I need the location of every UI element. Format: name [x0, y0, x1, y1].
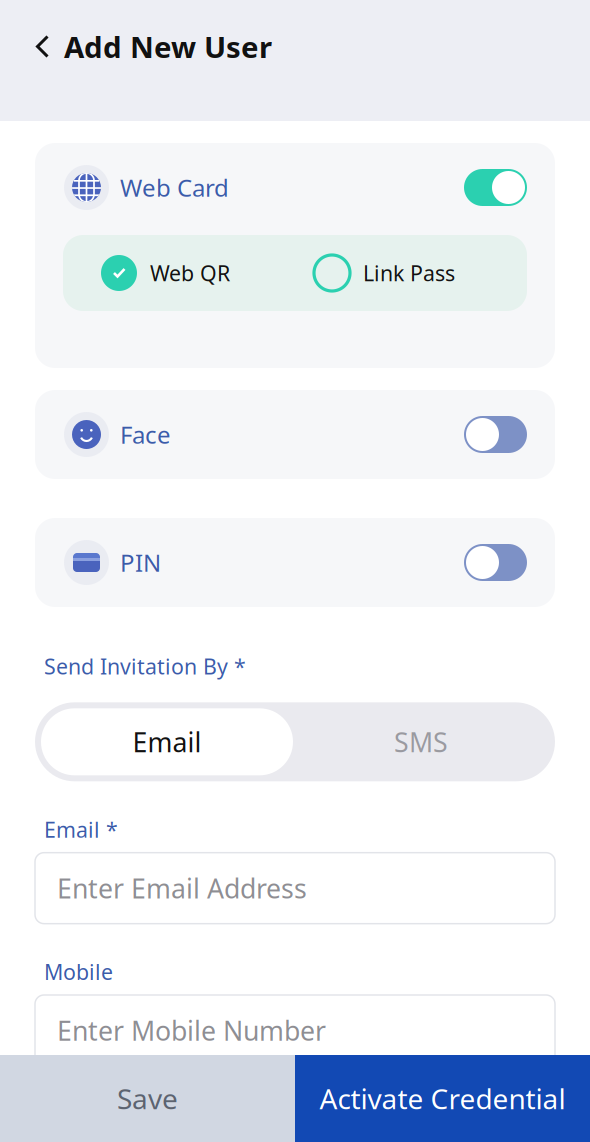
staticText: Email *	[44, 815, 118, 844]
button[interactable]: Web QR	[101, 255, 230, 291]
staticText: Mobile	[44, 958, 113, 986]
staticText: Enter Email Address	[57, 870, 307, 906]
staticText: Save	[117, 1080, 178, 1117]
staticText: Link Pass	[363, 259, 455, 287]
staticText: Web QR	[150, 259, 230, 287]
button[interactable]: Web Card	[35, 143, 555, 232]
staticText: Email	[132, 724, 201, 759]
button[interactable]: SMS	[293, 708, 549, 775]
button[interactable]: Enter Email Address	[35, 853, 555, 924]
button[interactable]: Email	[41, 708, 293, 775]
staticText: Enter Mobile Number	[57, 1013, 326, 1048]
button[interactable]: Face	[35, 390, 555, 479]
staticText: Face	[120, 419, 171, 450]
staticText: Add New User	[64, 27, 272, 66]
staticText: Activate Credential	[319, 1080, 565, 1117]
button[interactable]: Activate Credential	[295, 1055, 590, 1142]
button[interactable]: Save	[0, 1055, 295, 1142]
button[interactable]: PIN	[35, 518, 555, 607]
staticText: SMS	[394, 724, 448, 759]
button[interactable]: Enter Mobile Number	[35, 995, 555, 1066]
staticText: Send Invitation By *	[44, 652, 246, 680]
button[interactable]: Link Pass	[314, 255, 455, 291]
button[interactable]: Add New User	[0, 27, 272, 66]
staticText: Web Card	[120, 172, 229, 203]
staticText: PIN	[120, 547, 161, 578]
